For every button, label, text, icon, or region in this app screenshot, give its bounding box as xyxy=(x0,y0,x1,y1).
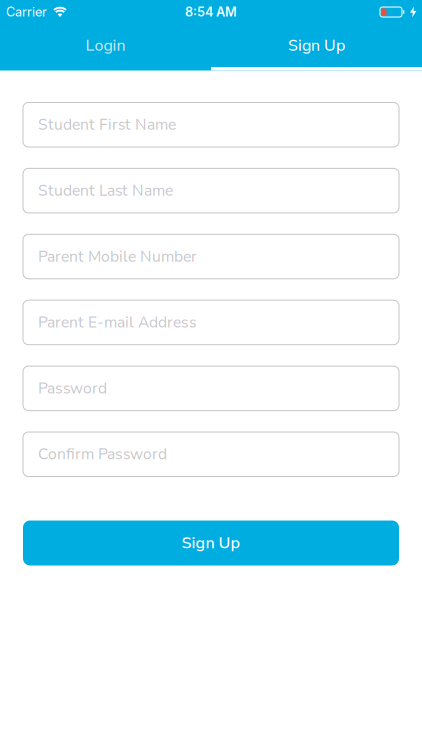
staticText: Login xyxy=(85,35,125,56)
textField[interactable]: Parent E-mail Address xyxy=(23,307,399,337)
staticText: Confirm Password xyxy=(23,439,219,469)
staticText: Password xyxy=(38,378,107,399)
button[interactable]: Login xyxy=(0,24,211,67)
button[interactable]: Sign Up xyxy=(23,520,399,565)
staticText: Student Last Name xyxy=(23,176,226,206)
secureTextField[interactable]: Password xyxy=(23,373,399,403)
button[interactable]: Sign Up xyxy=(211,24,422,67)
secureTextField[interactable]: Confirm Password xyxy=(23,439,399,469)
staticText: Parent Mobile Number xyxy=(23,241,268,272)
staticText: Parent Mobile Number xyxy=(38,246,197,267)
textField[interactable]: Student First Name xyxy=(23,110,399,140)
textField[interactable]: Parent Mobile Number xyxy=(23,241,399,272)
staticText: Student First Name xyxy=(38,114,176,135)
staticText: 8:54 AM xyxy=(185,4,237,20)
textField[interactable]: Student Last Name xyxy=(23,176,399,206)
staticText: Confirm Password xyxy=(38,444,167,465)
staticText: Parent E-mail Address xyxy=(38,312,197,333)
staticText: Student First Name xyxy=(23,110,228,140)
staticText: Sign Up xyxy=(181,532,240,554)
staticText: Parent E-mail Address xyxy=(23,307,258,337)
staticText: Sign Up xyxy=(288,35,345,56)
staticText: Password xyxy=(23,373,127,403)
staticText: Carrier xyxy=(6,4,47,20)
staticText: Student Last Name xyxy=(38,180,173,201)
